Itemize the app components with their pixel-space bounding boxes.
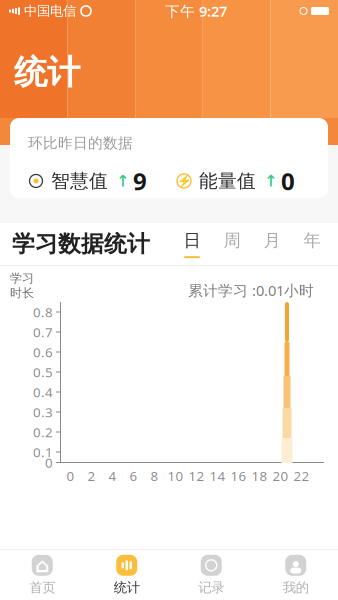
staticText: 智慧值 [51, 169, 108, 192]
staticText: ⚡ [176, 174, 191, 188]
staticText: ↑ [116, 172, 129, 190]
staticText: 周 [223, 230, 240, 251]
button[interactable]: 月 [252, 223, 292, 265]
staticText: 0.8 [33, 303, 53, 321]
button[interactable]: ⌂ [0, 550, 84, 600]
staticText: 0.5 [33, 363, 53, 381]
button[interactable]: 我的 [253, 550, 338, 600]
staticText: 6 [129, 467, 137, 485]
staticText: 0.7 [33, 323, 53, 341]
staticText: 0 [66, 467, 74, 485]
staticText: 统计 [14, 52, 80, 93]
staticText: 0 [281, 165, 295, 197]
button[interactable]: 记录 [169, 550, 253, 600]
staticText: 16 [230, 467, 246, 485]
button[interactable]: 日 [172, 223, 212, 265]
staticText: 22 [293, 467, 309, 485]
staticText: 0.6 [33, 343, 53, 361]
staticText: 首页 [29, 579, 55, 596]
staticText: ⌂ [35, 554, 49, 577]
staticText: 学习数据统计 [12, 230, 150, 258]
staticText: 9 [133, 165, 147, 197]
staticText: 我的 [283, 579, 309, 596]
staticText: 能量值 [199, 169, 256, 192]
staticText: 学习 [10, 271, 34, 286]
staticText: 记录 [198, 579, 224, 596]
staticText: 中国电信 [24, 3, 76, 19]
staticText: 2 [87, 467, 95, 485]
staticText: 0.1 [33, 443, 53, 461]
staticText: 0.2 [33, 423, 53, 441]
staticText: 统计 [114, 579, 140, 596]
staticText: 日 [183, 230, 200, 251]
button[interactable]: 年 [292, 223, 332, 265]
staticText: 年 [303, 230, 320, 251]
staticText: 12 [188, 467, 204, 485]
staticText: 0.3 [33, 403, 53, 421]
staticText: 下午 9:27 [165, 1, 227, 21]
button[interactable]: 周 [212, 223, 252, 265]
staticText: 月 [263, 230, 280, 251]
staticText: 环比昨日的数据 [28, 134, 133, 152]
staticText: 时长 [10, 286, 34, 300]
staticText: 累计学习 :0.01小时 [188, 280, 314, 300]
staticText: 8 [150, 467, 158, 485]
staticText: 4 [108, 467, 116, 485]
staticText: 14 [209, 467, 225, 485]
staticText: 10 [167, 467, 183, 485]
button[interactable]: 统计 [84, 550, 169, 600]
staticText: 0.4 [33, 383, 53, 401]
staticText: 20 [272, 467, 288, 485]
staticText: 0 [45, 454, 53, 471]
staticText: 18 [251, 467, 267, 485]
staticText: ↑ [264, 172, 277, 190]
